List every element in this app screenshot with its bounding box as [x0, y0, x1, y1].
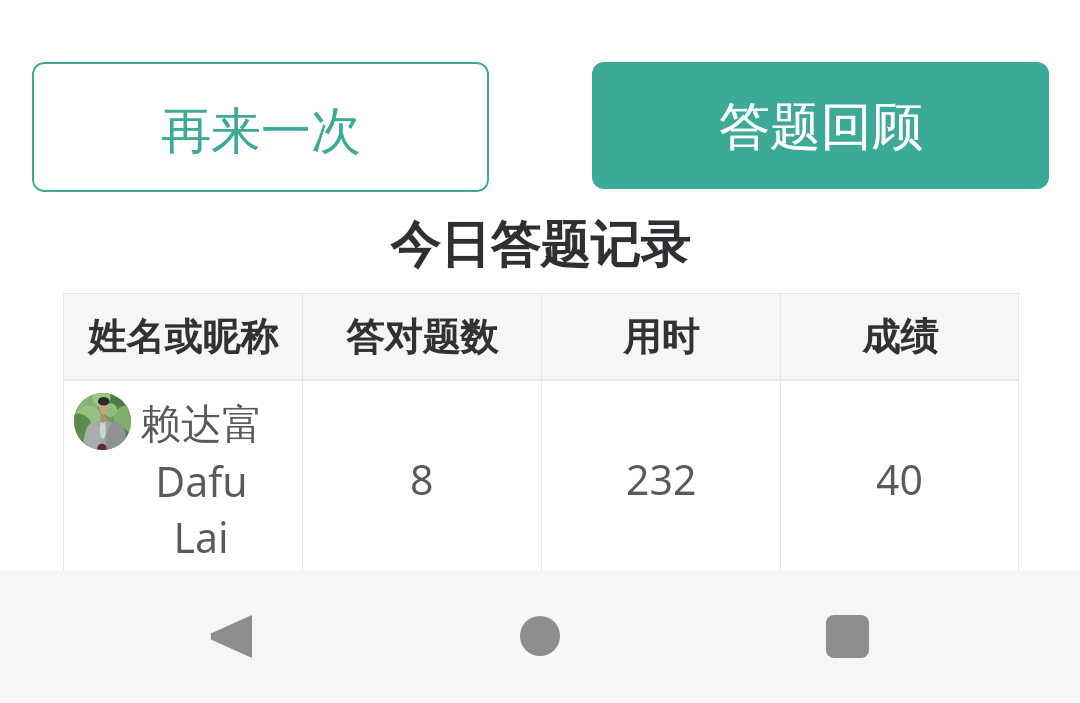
button[interactable]: Home — [480, 590, 600, 682]
staticText: 今日答题记录 — [390, 214, 690, 277]
staticText: 232 — [626, 451, 697, 507]
staticText: 再来一次 — [161, 100, 361, 163]
button[interactable]: Recent apps — [787, 590, 907, 682]
staticText: 40 — [876, 451, 923, 507]
staticText: 用时 — [623, 313, 699, 361]
staticText: 8 — [410, 451, 434, 507]
staticText: 赖达富 — [140, 399, 263, 451]
button[interactable]: 答题回顾 — [592, 62, 1049, 189]
staticText: 成绩 — [862, 313, 938, 361]
staticText: Dafu — [155, 453, 248, 509]
staticText: 答题回顾 — [719, 95, 923, 159]
button[interactable]: Back — [170, 590, 290, 682]
staticText: 姓名或昵称 — [88, 313, 278, 361]
button[interactable]: 再来一次 — [32, 62, 489, 192]
staticText: Lai — [173, 509, 229, 565]
staticText: 答对题数 — [346, 313, 498, 361]
